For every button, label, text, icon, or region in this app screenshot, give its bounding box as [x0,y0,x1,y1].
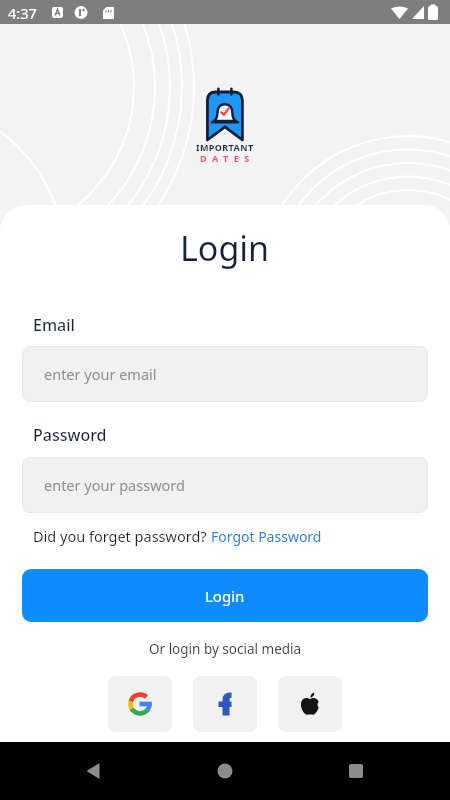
staticText: Or login by social media [149,640,302,658]
staticText: Did you forget password? [33,526,211,546]
staticText: IMPORTANT [196,141,254,153]
staticText: Login [180,225,270,271]
staticText: enter your password [44,475,185,495]
staticText: Forgot Password [211,527,322,546]
staticText: 4:37 [8,3,37,23]
staticText: enter your email [44,364,157,384]
staticText: Login [205,586,245,606]
staticText: Email [33,314,75,336]
staticText: DATES [200,152,255,164]
staticText: Password [33,424,107,446]
